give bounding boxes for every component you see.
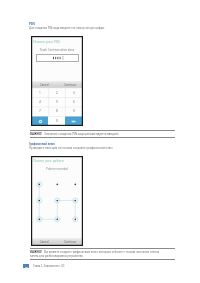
staticText: 5 bbox=[56, 100, 58, 104]
button[interactable]: Cancel bbox=[32, 238, 57, 245]
staticText: Choose your pattern bbox=[33, 159, 64, 163]
staticText: PIN bbox=[29, 22, 35, 26]
staticText: 6 bbox=[73, 100, 75, 104]
button[interactable]: 4 bbox=[32, 97, 48, 106]
staticText: 2 bbox=[56, 91, 58, 95]
button[interactable]: Cancel bbox=[32, 81, 57, 88]
button[interactable]: 8 bbox=[48, 106, 65, 116]
button[interactable]: Continue bbox=[57, 81, 82, 88]
other: PIN entry bbox=[36, 54, 79, 62]
staticText: Continue bbox=[64, 83, 76, 87]
button[interactable]: 7 bbox=[32, 106, 48, 116]
staticText: Графический ключ bbox=[29, 142, 55, 146]
staticText: Cancel bbox=[40, 240, 49, 244]
button[interactable]: 5 bbox=[48, 97, 65, 106]
staticText: ВАЖНО! bbox=[30, 132, 43, 136]
staticText: Touch Continue when done bbox=[32, 48, 82, 52]
button[interactable]: Delete bbox=[32, 116, 48, 126]
button[interactable]: 9 bbox=[65, 106, 82, 116]
button[interactable]: 2 bbox=[48, 88, 65, 97]
button[interactable]: 6 bbox=[65, 97, 82, 106]
button[interactable]: 3 bbox=[65, 88, 82, 97]
button[interactable]: 0 bbox=[48, 116, 65, 126]
staticText: Choose your PIN bbox=[33, 39, 60, 44]
staticText: 7 bbox=[39, 109, 41, 113]
button[interactable]: Continue bbox=[57, 238, 82, 245]
staticText: 4 bbox=[39, 100, 41, 104]
staticText: Cancel bbox=[40, 83, 49, 87]
staticText: 16 bbox=[25, 265, 28, 268]
staticText: Значение создания PIN-кода рекомендуется… bbox=[44, 132, 119, 136]
staticText: 1 bbox=[39, 91, 41, 95]
staticText: 0 bbox=[56, 119, 58, 123]
staticText: 8 bbox=[56, 109, 58, 113]
button[interactable]: Next bbox=[65, 116, 82, 126]
staticText: Pattern recorded bbox=[32, 167, 82, 171]
staticText: Вы можете создать графический ключ котор… bbox=[44, 250, 159, 254]
staticText: Проведите пальцем по точкам создайте гра… bbox=[29, 146, 113, 150]
staticText: 9 bbox=[73, 109, 75, 113]
button[interactable]: 1 bbox=[32, 88, 48, 97]
staticText: ВАЖНО! bbox=[30, 250, 43, 254]
staticText: Глава 2. Знакомство с ОС bbox=[33, 264, 65, 268]
staticText: Для создания PIN-кода введите его номер … bbox=[29, 26, 105, 30]
staticText: 3 bbox=[73, 91, 75, 95]
staticText: затем для разблокировки устройства bbox=[30, 254, 83, 258]
staticText: Continue bbox=[64, 240, 76, 244]
